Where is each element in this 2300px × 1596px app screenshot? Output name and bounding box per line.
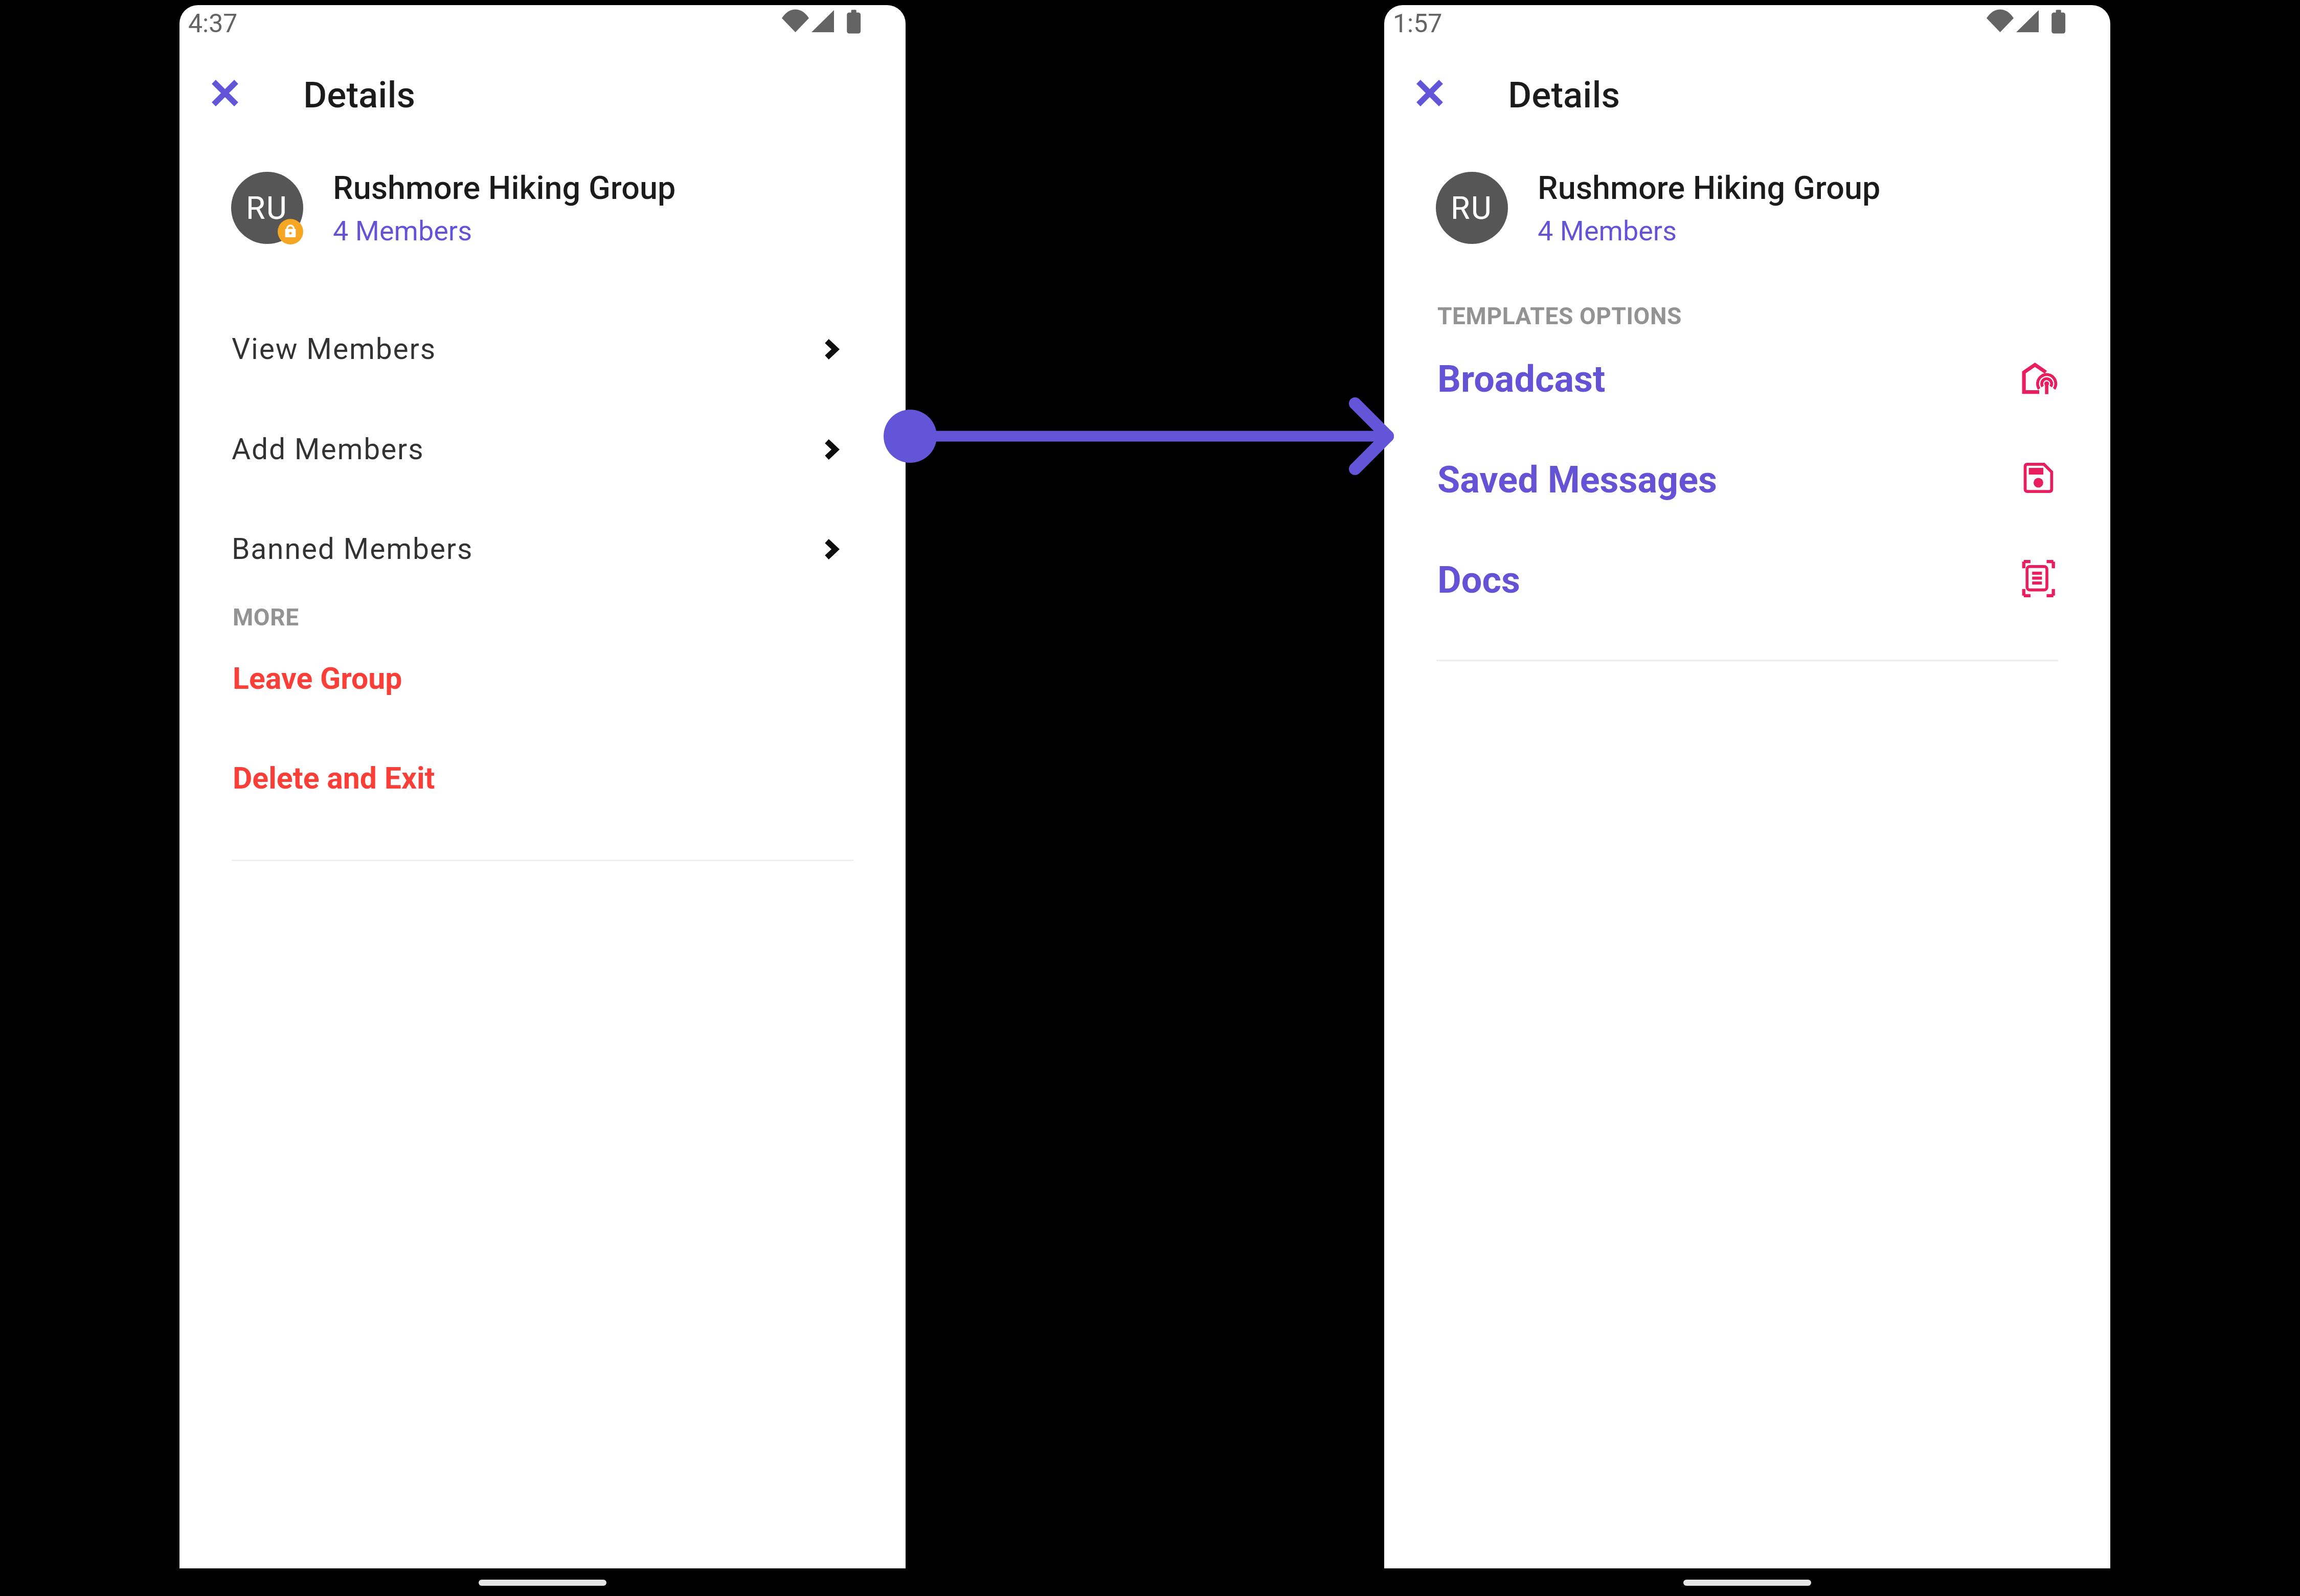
staticText: Docs <box>1437 558 1520 601</box>
button[interactable]: Delete and Exit <box>179 743 906 810</box>
button[interactable]: Add Members <box>179 414 906 481</box>
staticText: Rushmore Hiking Group <box>333 169 676 207</box>
staticText: Rushmore Hiking Group <box>1538 169 1881 207</box>
other: Saved Messages <box>2020 458 2061 499</box>
staticText: Delete and Exit <box>233 760 435 796</box>
staticText: Details <box>303 74 416 116</box>
staticText: 4:37 <box>188 9 238 39</box>
button[interactable]: Saved Messages <box>1384 439 2110 516</box>
staticText: View Members <box>232 332 436 366</box>
staticText: Add Members <box>232 432 424 466</box>
staticText: RU <box>1451 190 1493 226</box>
button[interactable]: Banned Members <box>179 514 906 580</box>
button[interactable]: Leave Group <box>179 643 906 710</box>
button[interactable] <box>179 159 906 259</box>
staticText: Broadcast <box>1437 357 1606 400</box>
button[interactable]: Broadcast <box>1384 339 2110 415</box>
staticText: MORE <box>233 603 299 631</box>
button[interactable]: View Members <box>179 314 906 380</box>
button[interactable] <box>1384 159 2110 259</box>
other: Docs <box>2020 555 2061 596</box>
staticText: 1:57 <box>1393 9 1442 39</box>
button[interactable]: Close <box>199 67 248 116</box>
staticText: 4 Members <box>1538 215 1677 247</box>
staticText: TEMPLATES OPTIONS <box>1437 302 1682 330</box>
button[interactable]: Close <box>1404 67 1453 116</box>
staticText: Details <box>1508 74 1620 116</box>
staticText: Banned Members <box>232 532 473 566</box>
staticText: Leave Group <box>233 661 402 696</box>
staticText: RU <box>246 190 288 226</box>
staticText: 4 Members <box>333 215 472 247</box>
staticText: Saved Messages <box>1437 458 1718 501</box>
button[interactable]: Docs <box>1384 540 2110 616</box>
other: Broadcast <box>2020 361 2061 401</box>
